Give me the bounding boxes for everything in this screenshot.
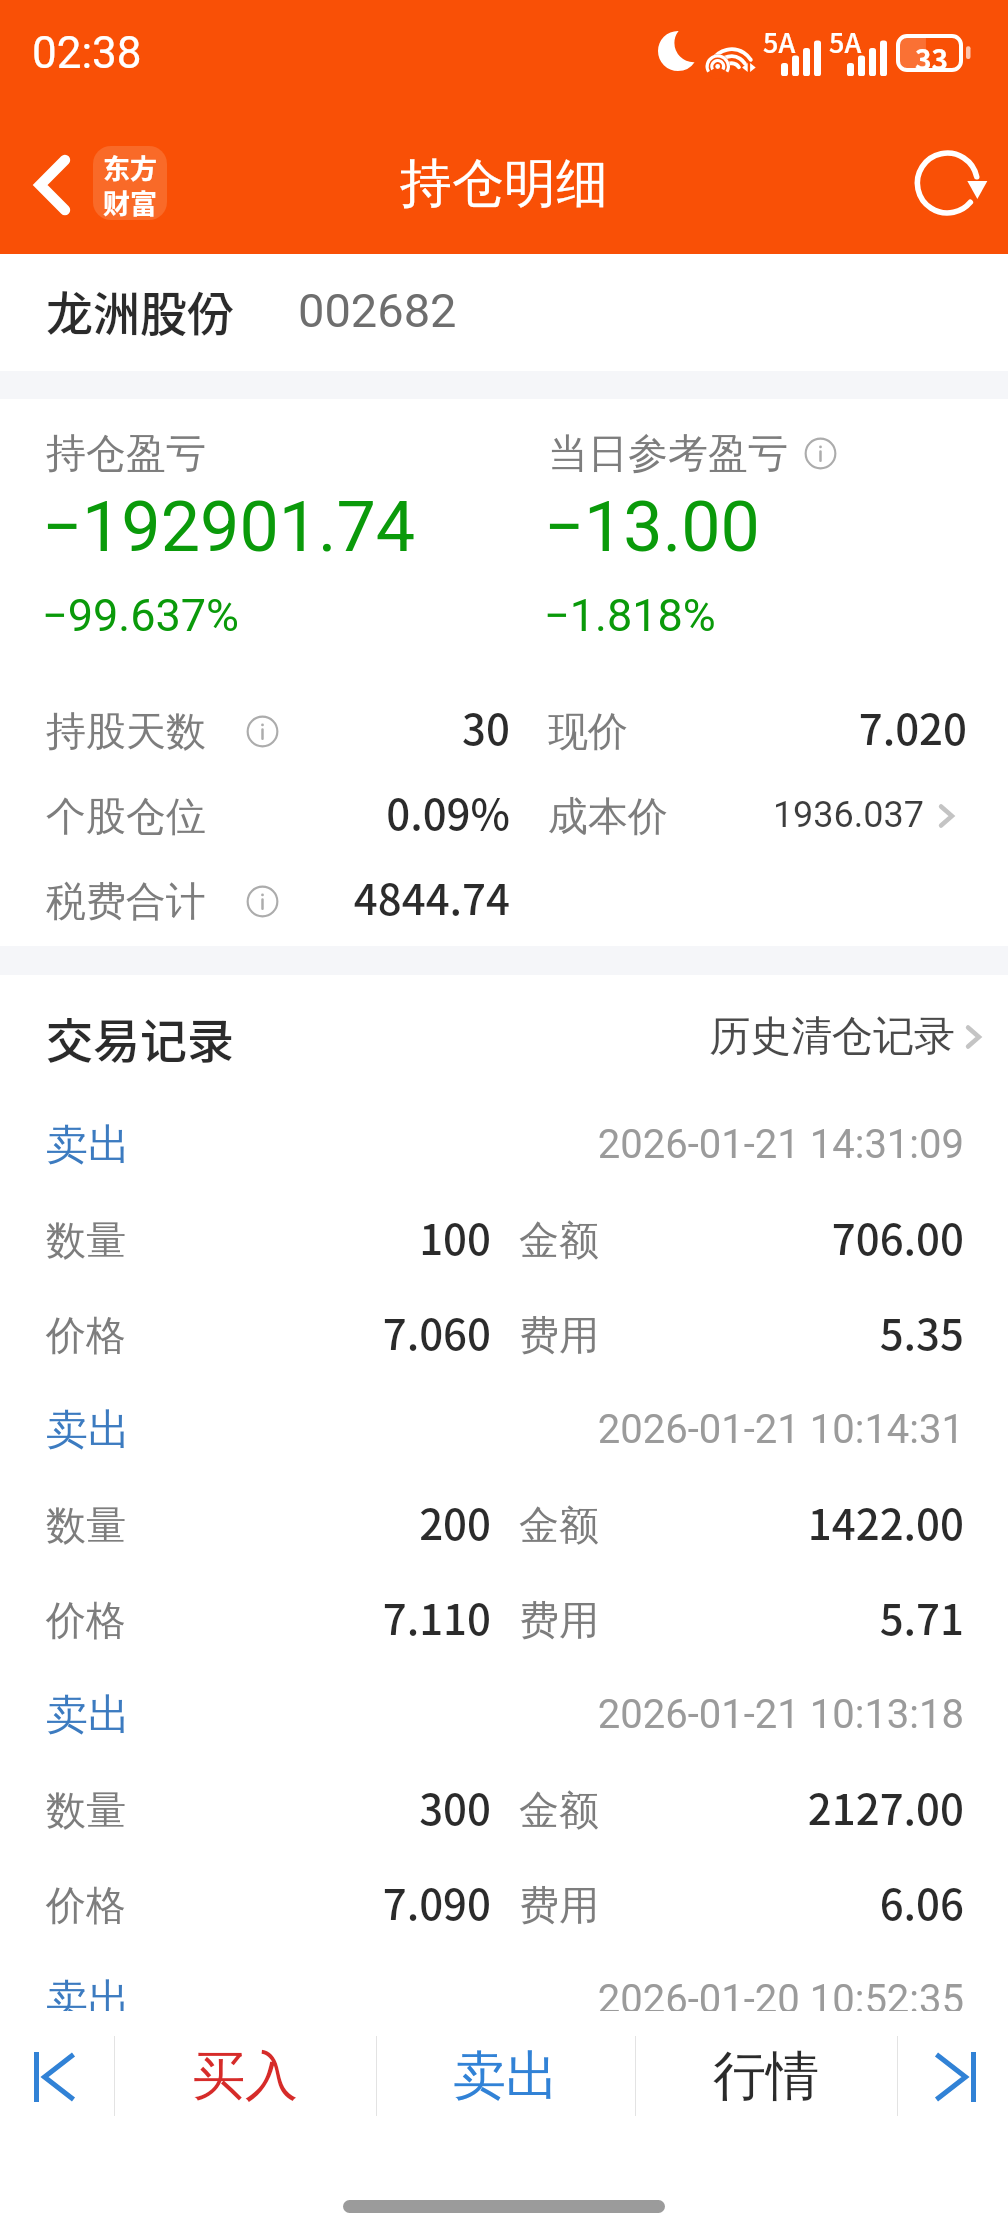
staticText: 数量 [46, 1215, 126, 1265]
staticText: 2026-01-20 10:52:35 [564, 1976, 964, 2023]
staticText: 持仓盈亏 [46, 428, 206, 478]
button[interactable]: First page [0, 2011, 114, 2135]
staticText: −192901.74 [42, 486, 416, 568]
staticText: 卖出 [46, 1119, 130, 1172]
button[interactable]: 行情 [635, 2011, 897, 2135]
staticText: 数量 [46, 2070, 126, 2120]
staticText: 2026-01-21 10:14:31 [564, 1406, 964, 1453]
staticText: 7.110 [240, 1586, 491, 1647]
button[interactable]: 卖出 [0, 1952, 1008, 2232]
staticText: −13.00 [544, 486, 760, 568]
staticText: 33 [915, 38, 949, 79]
staticText: 交易记录 [46, 1003, 234, 1071]
staticText: 行情 [713, 2043, 819, 2110]
button[interactable]: Last page [897, 2011, 1008, 2135]
staticText: 价格 [46, 1310, 126, 1360]
button[interactable]: 买入 [114, 2011, 376, 2135]
staticText: 现价 [548, 706, 628, 756]
staticText: 002682 [298, 283, 457, 338]
staticText: 2026-01-21 10:13:18 [564, 1691, 964, 1738]
button[interactable]: 卖出 [0, 1667, 1008, 1952]
staticText: 成本价 [548, 791, 668, 841]
button[interactable]: 卖出 [376, 2011, 635, 2135]
staticText: 费用 [519, 2162, 599, 2212]
button[interactable]: Refresh [912, 145, 988, 221]
staticText: 02:38 [32, 27, 142, 79]
staticText: 数量 [46, 1785, 126, 1835]
staticText: 7.090 [240, 1871, 491, 1932]
staticText: 卖出 [46, 1974, 130, 2027]
button[interactable]: 卖出 [0, 1382, 1008, 1667]
staticText: 东方 [103, 148, 157, 187]
staticText: 买入 [192, 2043, 298, 2110]
staticText: 5A [829, 22, 862, 61]
staticText: 卖出 [46, 1404, 130, 1457]
staticText: 400 [240, 2061, 491, 2122]
staticText: 税费合计 [46, 876, 206, 926]
staticText: 金额 [519, 1215, 599, 1265]
staticText: 金额 [519, 1785, 599, 1835]
staticText: 200 [240, 1491, 491, 1552]
staticText: 1936.037 [702, 794, 924, 836]
staticText: 7.020 [702, 696, 967, 757]
staticText: 持仓明细 [400, 151, 608, 217]
staticText: −1.818% [544, 589, 716, 642]
staticText: 2127.00 [700, 1776, 964, 1837]
staticText: 5A [763, 22, 796, 61]
staticText: 0.09% [252, 781, 510, 842]
staticText: 100 [240, 1206, 491, 1267]
button[interactable]: 卖出 [0, 1097, 1008, 1382]
staticText: 706.00 [700, 1206, 964, 1267]
staticText: 费用 [519, 1310, 599, 1360]
staticText: −99.637% [42, 589, 240, 642]
staticText: 5.71 [700, 1586, 964, 1647]
staticText: 1422.00 [700, 1491, 964, 1552]
button[interactable]: 历史清仓记录 [705, 1001, 986, 1073]
staticText: 价格 [46, 1880, 126, 1930]
staticText: 费用 [519, 1880, 599, 1930]
staticText: 2026-01-21 14:31:09 [564, 1121, 964, 1168]
staticText: 6.06 [700, 1871, 964, 1932]
staticText: 2830.00 [700, 2061, 964, 2122]
staticText: 300 [240, 1776, 491, 1837]
staticText: 金额 [519, 2070, 599, 2120]
staticText: 卖出 [453, 2043, 559, 2110]
staticText: 龙洲股份 [46, 276, 234, 344]
staticText: 7.075 [240, 2154, 491, 2215]
staticText: 金额 [519, 1500, 599, 1550]
staticText: 价格 [46, 1595, 126, 1645]
staticText: 5.35 [700, 1301, 964, 1362]
staticText: 卖出 [46, 1689, 130, 1742]
staticText: 当日参考盈亏 [548, 428, 788, 478]
staticText: 财富 [103, 183, 157, 218]
staticText: 持股天数 [46, 706, 206, 756]
staticText: 30 [252, 696, 510, 757]
staticText: 4844.74 [252, 866, 510, 927]
staticText: 数量 [46, 1500, 126, 1550]
staticText: 历史清仓记录 [709, 1011, 955, 1063]
button[interactable]: Back [14, 140, 90, 216]
staticText: 费用 [519, 1595, 599, 1645]
staticText: 7.060 [240, 1301, 491, 1362]
staticText: 个股仓位 [46, 791, 206, 841]
